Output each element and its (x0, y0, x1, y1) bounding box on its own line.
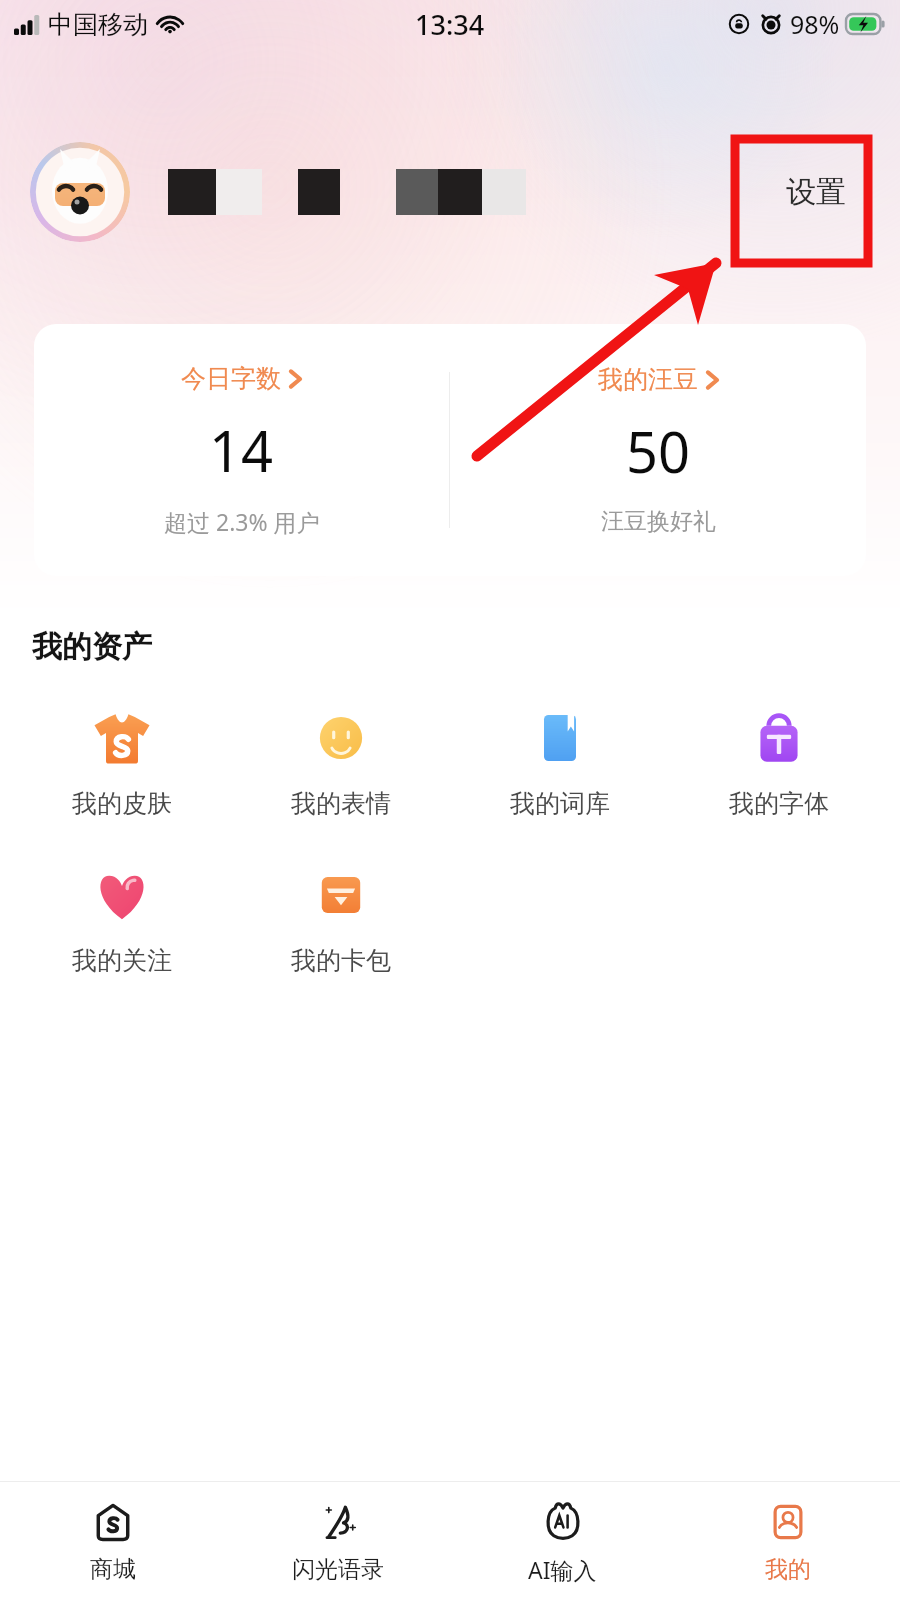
button[interactable]: 头像 (30, 142, 130, 242)
staticText: 今日字数 (181, 363, 281, 394)
staticText: 超过 2.3% 用户 (164, 506, 320, 537)
staticText: 我的 (765, 1555, 811, 1584)
button[interactable]: 我的字体 (669, 698, 888, 827)
staticText: 我的资产 (32, 628, 152, 666)
staticText: 我的表情 (291, 788, 391, 819)
button[interactable]: AI输入 (450, 1482, 675, 1600)
staticText: 我的卡包 (291, 945, 391, 976)
button[interactable]: 设置 (776, 167, 856, 217)
button[interactable]: 闪光语录 (225, 1482, 450, 1600)
staticText: 98% (790, 7, 840, 41)
button[interactable]: 我的关注 (12, 855, 231, 984)
staticText: AI输入 (528, 1554, 597, 1585)
staticText: 闪光语录 (292, 1555, 384, 1584)
staticText: 我的皮肤 (72, 788, 172, 819)
staticText: 中国移动 (48, 9, 148, 40)
button[interactable]: 我的皮肤 (12, 698, 231, 827)
staticText: 我的词库 (510, 788, 610, 819)
button[interactable]: 我的表情 (231, 698, 450, 827)
staticText: 14 (209, 412, 274, 488)
staticText: 我的关注 (72, 945, 172, 976)
staticText: 我的字体 (729, 788, 829, 819)
staticText: 汪豆换好礼 (601, 507, 716, 536)
staticText: 13:34 (415, 6, 485, 43)
button[interactable]: 我的 (675, 1482, 900, 1600)
button[interactable]: 我的词库 (450, 698, 669, 827)
staticText: 商城 (90, 1555, 136, 1584)
staticText: 50 (626, 413, 691, 489)
staticText: 设置 (786, 173, 846, 211)
button[interactable]: 今日字数 (34, 324, 449, 576)
staticText: 我的汪豆 (598, 364, 698, 395)
button[interactable]: 我的卡包 (231, 855, 450, 984)
button[interactable]: 我的汪豆 (450, 324, 866, 576)
button[interactable]: 商城 (0, 1482, 225, 1600)
